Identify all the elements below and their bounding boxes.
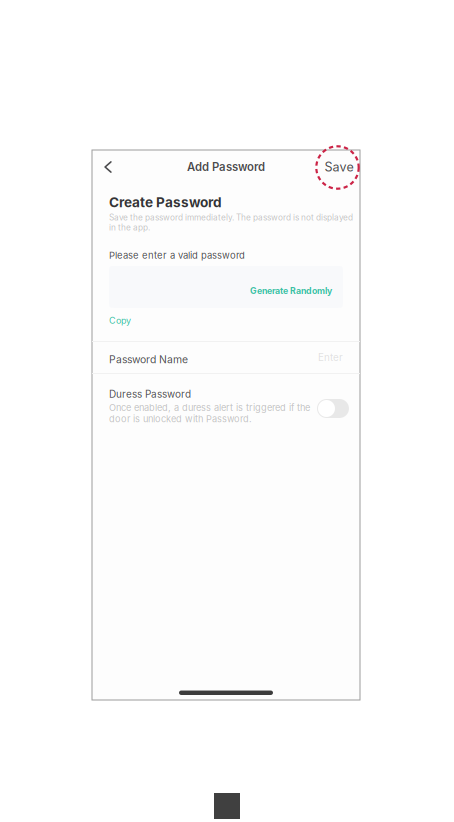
button[interactable]: Duress Password <box>317 388 349 418</box>
staticText: Add Password <box>187 160 265 174</box>
button[interactable]: Back <box>98 155 118 179</box>
staticText: Generate Randomly <box>250 286 332 296</box>
staticText: Create Password <box>109 194 222 210</box>
button[interactable]: Password Name <box>92 342 360 373</box>
staticText: Copy <box>109 315 131 326</box>
button[interactable]: Copy <box>109 308 131 336</box>
staticText: Please enter a valid password <box>109 249 245 261</box>
staticText: Password Name <box>109 353 188 366</box>
staticText: Enter <box>318 351 343 363</box>
staticText: Once enabled, a duress alert is triggere… <box>109 402 310 424</box>
staticText: Save the password immediately. The passw… <box>109 212 353 232</box>
staticText: Duress Password <box>109 388 191 400</box>
button[interactable]: Generate Randomly <box>250 278 343 296</box>
button[interactable]: Save <box>324 155 354 179</box>
staticText: Save <box>324 159 353 175</box>
